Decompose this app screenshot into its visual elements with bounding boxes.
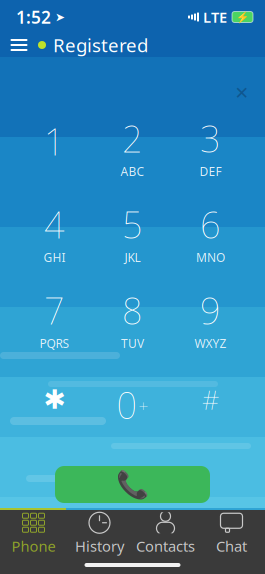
staticText: ➤	[55, 10, 65, 24]
button[interactable]: 8	[93, 289, 171, 349]
button[interactable]: 2	[93, 117, 171, 177]
button[interactable]: 7	[15, 289, 93, 349]
button[interactable]: 0	[93, 375, 171, 435]
staticText: JKL	[124, 249, 140, 265]
staticText: 6	[200, 201, 221, 248]
staticText: 1:52	[16, 5, 51, 28]
staticText: Phone	[11, 536, 55, 556]
staticText: 2	[122, 115, 143, 162]
staticText: 9	[200, 287, 221, 334]
staticText: TUV	[121, 335, 144, 351]
button[interactable]: Delete	[225, 81, 259, 105]
staticText: WXYZ	[194, 335, 226, 351]
button[interactable]: Chat	[198, 512, 264, 556]
staticText: #	[202, 382, 219, 417]
staticText: ABC	[120, 163, 144, 179]
staticText: 7	[44, 287, 65, 334]
button[interactable]: Phone	[0, 512, 66, 556]
staticText: ✱	[43, 384, 65, 415]
staticText: History	[75, 536, 124, 556]
staticText: Chat	[216, 536, 247, 556]
staticText: ⚡	[236, 11, 249, 23]
staticText: Contacts	[136, 536, 195, 556]
button[interactable]: Call	[55, 466, 210, 503]
staticText: LTE	[203, 7, 227, 27]
staticText: MNO	[196, 249, 225, 265]
button[interactable]: 4	[15, 203, 93, 263]
staticText: GHI	[43, 249, 65, 265]
staticText: 5	[122, 201, 143, 248]
staticText: Registered	[53, 33, 148, 57]
button[interactable]: Contacts	[132, 512, 198, 556]
button[interactable]: 3	[171, 117, 249, 177]
button[interactable]: 5	[93, 203, 171, 263]
button[interactable]: ✱	[15, 375, 93, 435]
staticText: 1	[44, 118, 65, 165]
button[interactable]: History	[66, 512, 132, 556]
button[interactable]: Menu	[0, 31, 38, 59]
button[interactable]: 9	[171, 289, 249, 349]
staticText: 📞	[116, 469, 149, 500]
staticText: PQRS	[39, 335, 69, 351]
staticText: 3	[200, 115, 221, 162]
button[interactable]: 1	[15, 117, 93, 177]
staticText: +	[138, 393, 148, 416]
staticText: ✕	[234, 83, 249, 103]
staticText: 8	[122, 287, 143, 334]
staticText: 0	[116, 381, 137, 429]
staticText: DEF	[199, 163, 221, 179]
button[interactable]: #	[171, 375, 249, 435]
staticText: 4	[44, 201, 65, 248]
button[interactable]: 6	[171, 203, 249, 263]
